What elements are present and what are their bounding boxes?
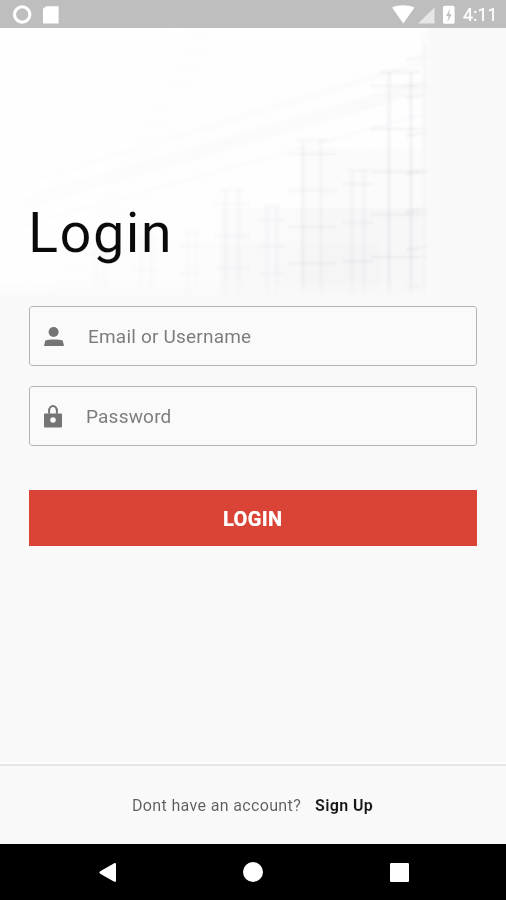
staticText: Password xyxy=(86,405,172,427)
button[interactable]: Password xyxy=(29,386,477,446)
button[interactable]: Recent apps xyxy=(375,848,423,896)
button[interactable]: Dont have an account? xyxy=(132,796,374,815)
staticText: Login xyxy=(28,200,174,266)
button[interactable]: Email or Username xyxy=(29,306,477,366)
staticText: 4:11 xyxy=(463,4,498,25)
staticText: Dont have an account? xyxy=(132,796,302,815)
staticText: Sign Up xyxy=(315,796,374,815)
staticText: Email or Username xyxy=(88,325,252,347)
button[interactable]: Home xyxy=(229,848,277,896)
staticText: LOGIN xyxy=(223,507,283,530)
button[interactable]: LOGIN xyxy=(29,490,477,546)
button[interactable]: Back xyxy=(83,848,131,896)
